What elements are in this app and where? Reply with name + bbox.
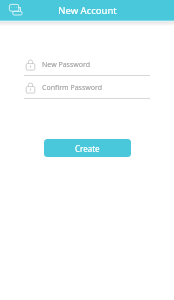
staticText: New Password [42,60,91,70]
staticText: Confirm Password [42,83,103,93]
staticText: New Account [58,4,117,17]
button[interactable]: Messages [9,4,23,16]
button[interactable]: Create [44,139,131,157]
staticText: Create [75,143,100,154]
button[interactable] [24,79,150,97]
button[interactable] [24,56,150,74]
